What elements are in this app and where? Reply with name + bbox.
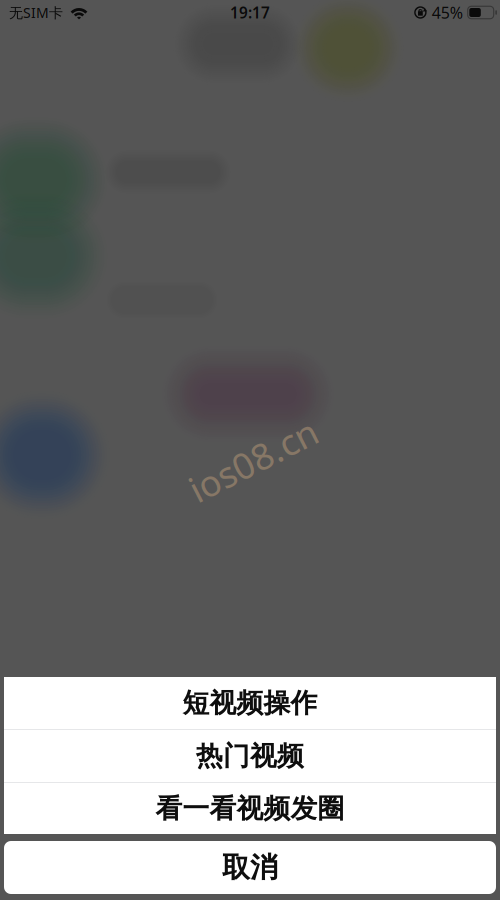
button[interactable]: 取消 <box>4 841 496 894</box>
button[interactable]: 短视频操作 <box>4 677 496 729</box>
staticText: 看一看视频发圈 <box>155 792 344 825</box>
staticText: ios08.cn <box>183 435 322 484</box>
button[interactable]: 热门视频 <box>4 730 496 782</box>
staticText: 45% <box>432 2 463 23</box>
staticText: 无SIM卡 <box>9 3 63 22</box>
staticText: 19:17 <box>230 2 270 23</box>
staticText: ios08.cn <box>183 435 322 484</box>
button[interactable]: 看一看视频发圈 <box>4 783 496 834</box>
staticText: ios08.cn <box>183 435 322 484</box>
staticText: 热门视频 <box>196 740 304 772</box>
staticText: 取消 <box>222 850 278 885</box>
staticText: 短视频操作 <box>182 687 317 719</box>
